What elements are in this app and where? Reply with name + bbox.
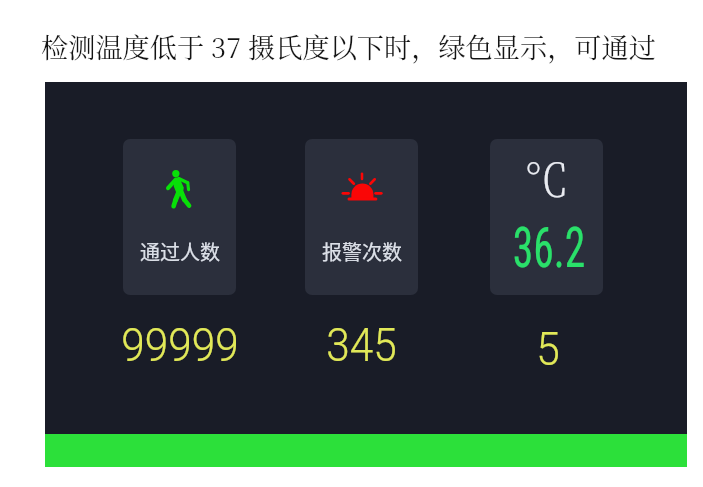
staticText: 5 — [536, 322, 560, 376]
button[interactable]: Pedestrian count — [123, 139, 236, 295]
staticText: 检测温度低于 37 摄氏度以下时，绿色显示，可通过 — [41, 27, 656, 66]
button[interactable]: ℃ — [490, 139, 603, 295]
staticText: 通过人数 — [140, 237, 220, 266]
staticText: 36.2 — [513, 216, 585, 280]
staticText: 99999 — [121, 318, 239, 372]
staticText: 345 — [326, 318, 397, 372]
button[interactable]: Alarm count — [305, 139, 418, 295]
staticText: ℃ — [524, 145, 570, 210]
staticText: 报警次数 — [322, 237, 402, 266]
